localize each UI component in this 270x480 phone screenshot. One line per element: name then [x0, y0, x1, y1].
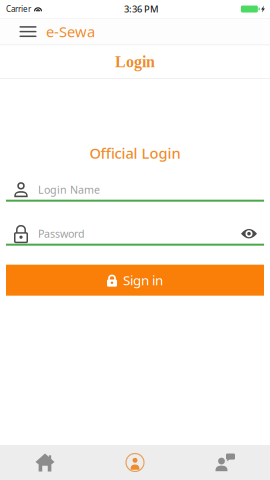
staticText: Login Name	[38, 183, 100, 197]
button[interactable]: e-Sewa	[46, 19, 95, 45]
button[interactable]: Account	[90, 445, 180, 480]
staticText: Official Login	[89, 143, 180, 163]
button[interactable]: Show password	[234, 224, 264, 244]
button[interactable]: Home	[0, 445, 90, 480]
staticText: Carrier	[6, 4, 31, 14]
button[interactable]: Sign in	[6, 265, 264, 296]
button[interactable]: Menu	[0, 19, 46, 45]
staticText: e-Sewa	[46, 22, 95, 41]
staticText: Sign in	[123, 271, 163, 289]
button[interactable]: Contact	[180, 445, 270, 480]
staticText: Login	[115, 53, 155, 71]
staticText: 3:36 PM	[124, 3, 159, 15]
staticText: Password	[38, 227, 85, 241]
